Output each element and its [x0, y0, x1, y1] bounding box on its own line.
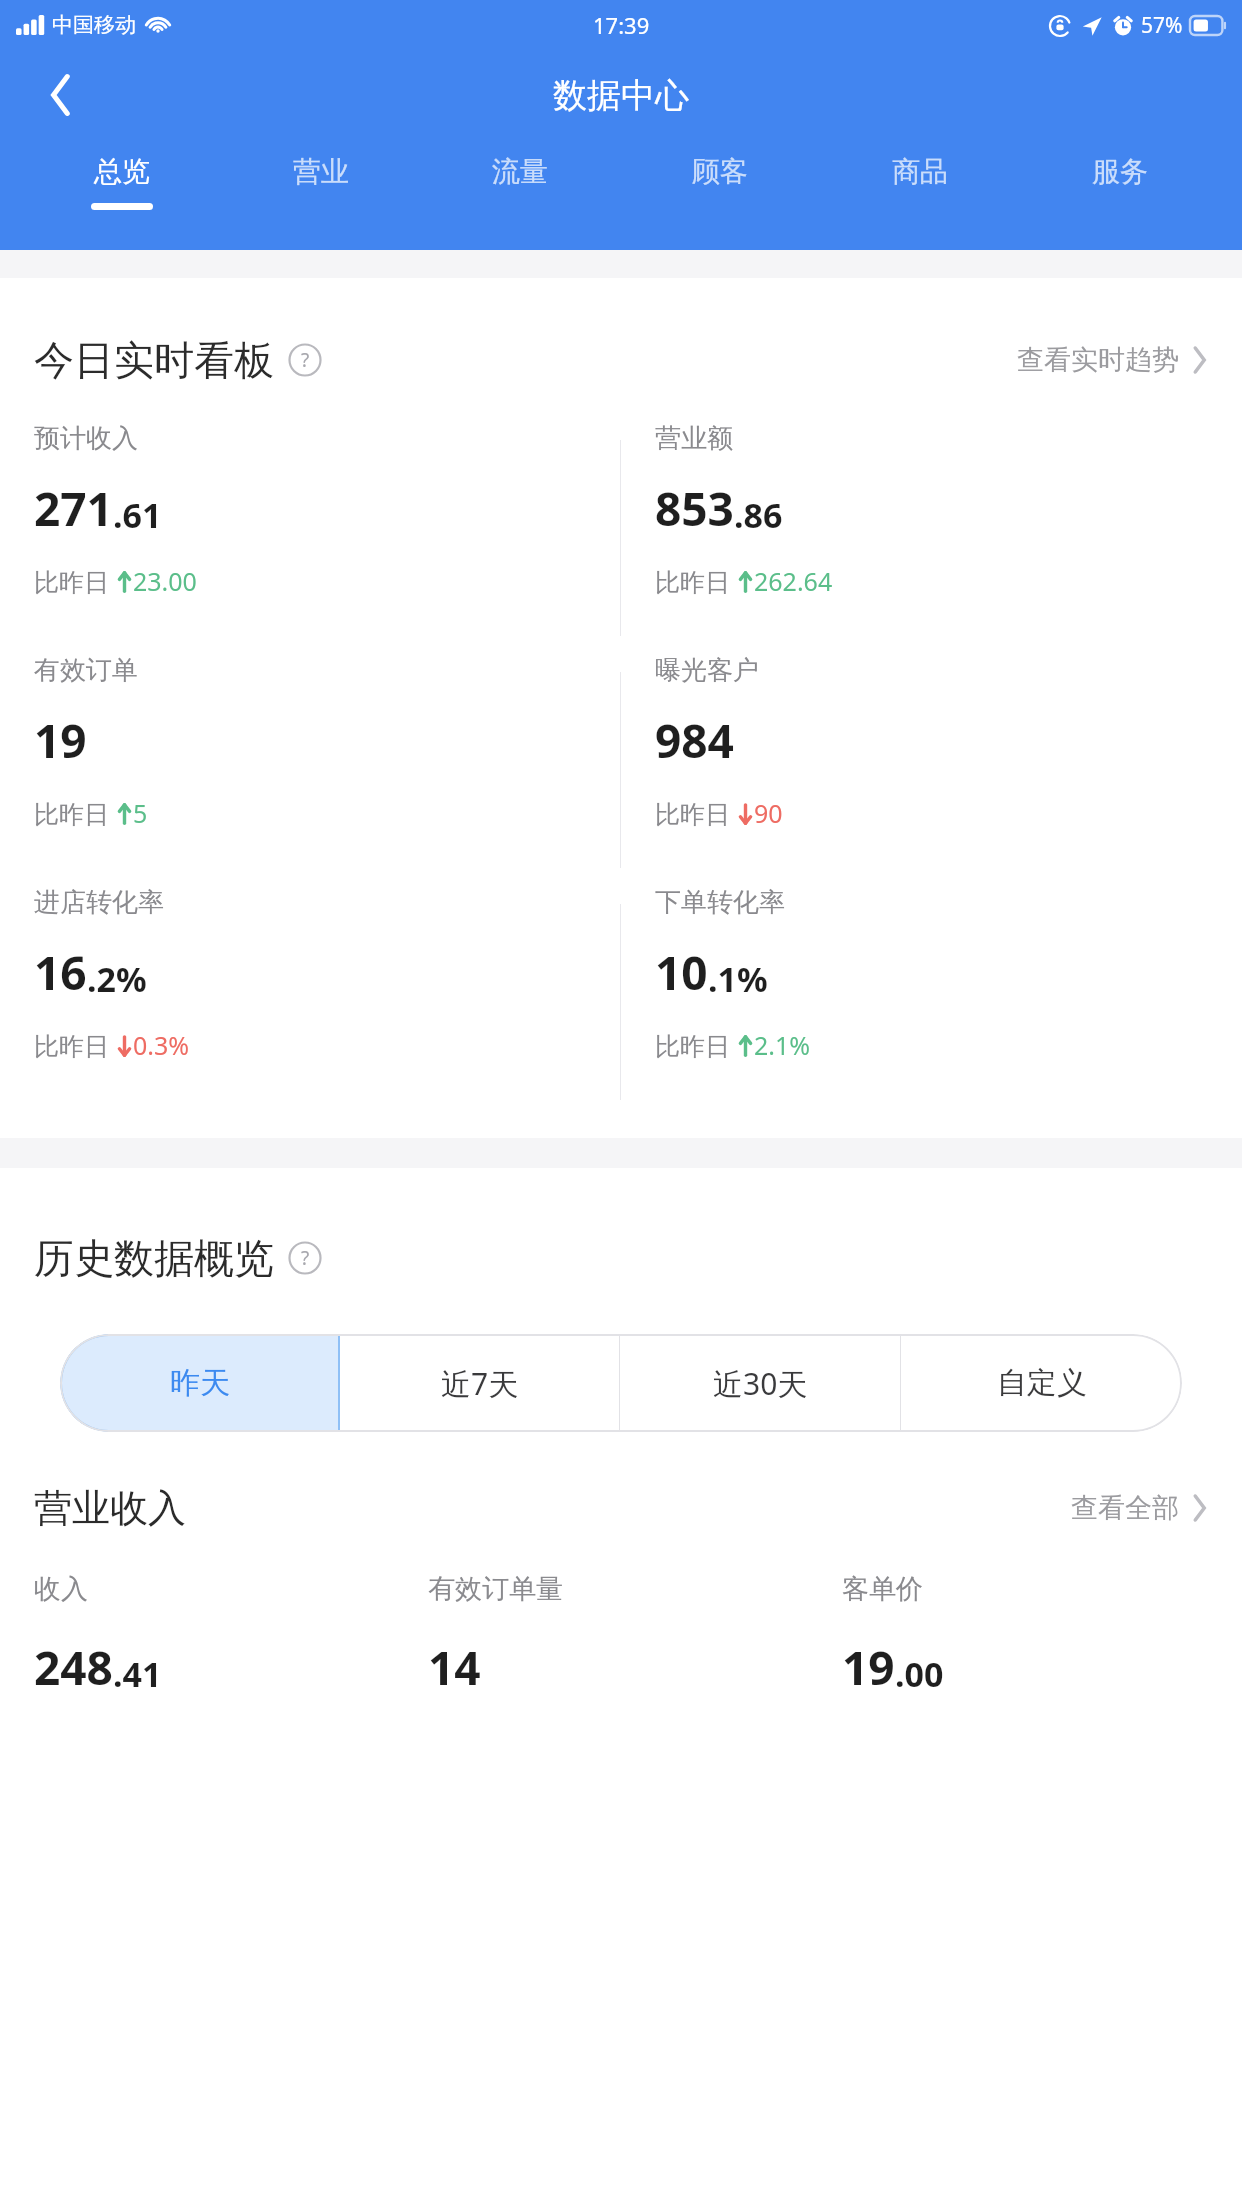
- staticText: 比昨日: [34, 1028, 116, 1062]
- staticText: 比昨日: [34, 796, 116, 830]
- staticText: ?: [301, 1245, 310, 1271]
- button[interactable]: 进店转化率: [0, 886, 620, 1118]
- staticText: 19: [34, 709, 87, 772]
- staticText: .61: [113, 492, 162, 538]
- button[interactable]: 收入: [0, 1572, 414, 1699]
- staticText: 进店转化率: [34, 886, 164, 919]
- button[interactable]: 自定义: [901, 1334, 1182, 1432]
- staticText: 有效订单量: [428, 1572, 563, 1606]
- staticText: 下单转化率: [655, 886, 785, 919]
- staticText: 近7天: [441, 1363, 519, 1404]
- staticText: 比昨日: [655, 796, 737, 830]
- staticText: ?: [301, 347, 310, 373]
- staticText: 总览: [94, 154, 150, 189]
- button[interactable]: 近30天: [620, 1334, 901, 1432]
- staticText: 营业额: [655, 422, 733, 455]
- staticText: 17:39: [593, 10, 650, 40]
- button[interactable]: 客单价: [828, 1572, 1242, 1699]
- button[interactable]: 服务: [1020, 140, 1220, 250]
- staticText: 271: [34, 477, 113, 540]
- staticText: 比昨日: [655, 564, 737, 598]
- staticText: 中国移动: [52, 12, 136, 38]
- staticText: 2.1%: [754, 1028, 811, 1062]
- button[interactable]: 查看全部: [1071, 1483, 1208, 1533]
- staticText: 曝光客户: [655, 654, 759, 687]
- button[interactable]: 流量: [420, 140, 620, 250]
- staticText: 预计收入: [34, 422, 138, 455]
- staticText: 262.64: [754, 564, 833, 598]
- staticText: 近30天: [713, 1363, 808, 1404]
- staticText: 14: [428, 1636, 481, 1699]
- staticText: 流量: [492, 154, 548, 189]
- button[interactable]: 商品: [820, 140, 1020, 250]
- staticText: .00: [895, 1651, 944, 1697]
- staticText: 自定义: [997, 1364, 1087, 1402]
- staticText: 查看全部: [1071, 1491, 1179, 1525]
- button[interactable]: 顾客: [620, 140, 820, 250]
- staticText: 984: [655, 709, 734, 772]
- button[interactable]: 曝光客户: [621, 654, 1242, 886]
- staticText: 数据中心: [553, 74, 689, 117]
- button[interactable]: 近7天: [340, 1334, 620, 1432]
- other: 说明: [288, 1241, 322, 1275]
- staticText: 248: [34, 1636, 113, 1699]
- staticText: 853: [655, 477, 734, 540]
- staticText: .86: [734, 492, 783, 538]
- button[interactable]: 昨天: [60, 1334, 340, 1432]
- other: 说明: [288, 343, 322, 377]
- button[interactable]: 营业: [221, 140, 420, 250]
- staticText: 比昨日: [655, 1028, 737, 1062]
- staticText: 查看实时趋势: [1017, 343, 1179, 377]
- button[interactable]: 预计收入: [0, 422, 620, 654]
- staticText: 23.00: [133, 564, 197, 598]
- staticText: 比昨日: [34, 564, 116, 598]
- staticText: 营业收入: [34, 1484, 186, 1532]
- staticText: 19: [842, 1636, 895, 1699]
- staticText: 有效订单: [34, 654, 138, 687]
- staticText: 90: [754, 796, 783, 830]
- staticText: 昨天: [170, 1364, 230, 1402]
- staticText: 57%: [1141, 11, 1183, 40]
- staticText: 今日实时看板: [34, 335, 274, 385]
- staticText: .1%: [708, 956, 768, 1002]
- staticText: 0.3%: [133, 1028, 190, 1062]
- staticText: 商品: [892, 154, 948, 189]
- button[interactable]: 查看实时趋势: [1017, 335, 1208, 385]
- staticText: 服务: [1092, 154, 1148, 189]
- staticText: 历史数据概览: [34, 1233, 274, 1283]
- staticText: 顾客: [692, 154, 748, 189]
- staticText: 营业: [293, 154, 349, 189]
- button[interactable]: 营业额: [621, 422, 1242, 654]
- button[interactable]: 总览: [22, 140, 221, 250]
- staticText: .2%: [87, 956, 147, 1002]
- button[interactable]: 返回: [30, 65, 90, 125]
- staticText: 16: [34, 941, 87, 1004]
- staticText: .41: [113, 1651, 162, 1697]
- button[interactable]: 有效订单量: [414, 1572, 828, 1699]
- button[interactable]: 有效订单: [0, 654, 620, 886]
- staticText: 10: [655, 941, 708, 1004]
- button[interactable]: 下单转化率: [621, 886, 1242, 1118]
- staticText: 5: [133, 796, 148, 830]
- staticText: 收入: [34, 1572, 88, 1606]
- staticText: 客单价: [842, 1572, 923, 1606]
